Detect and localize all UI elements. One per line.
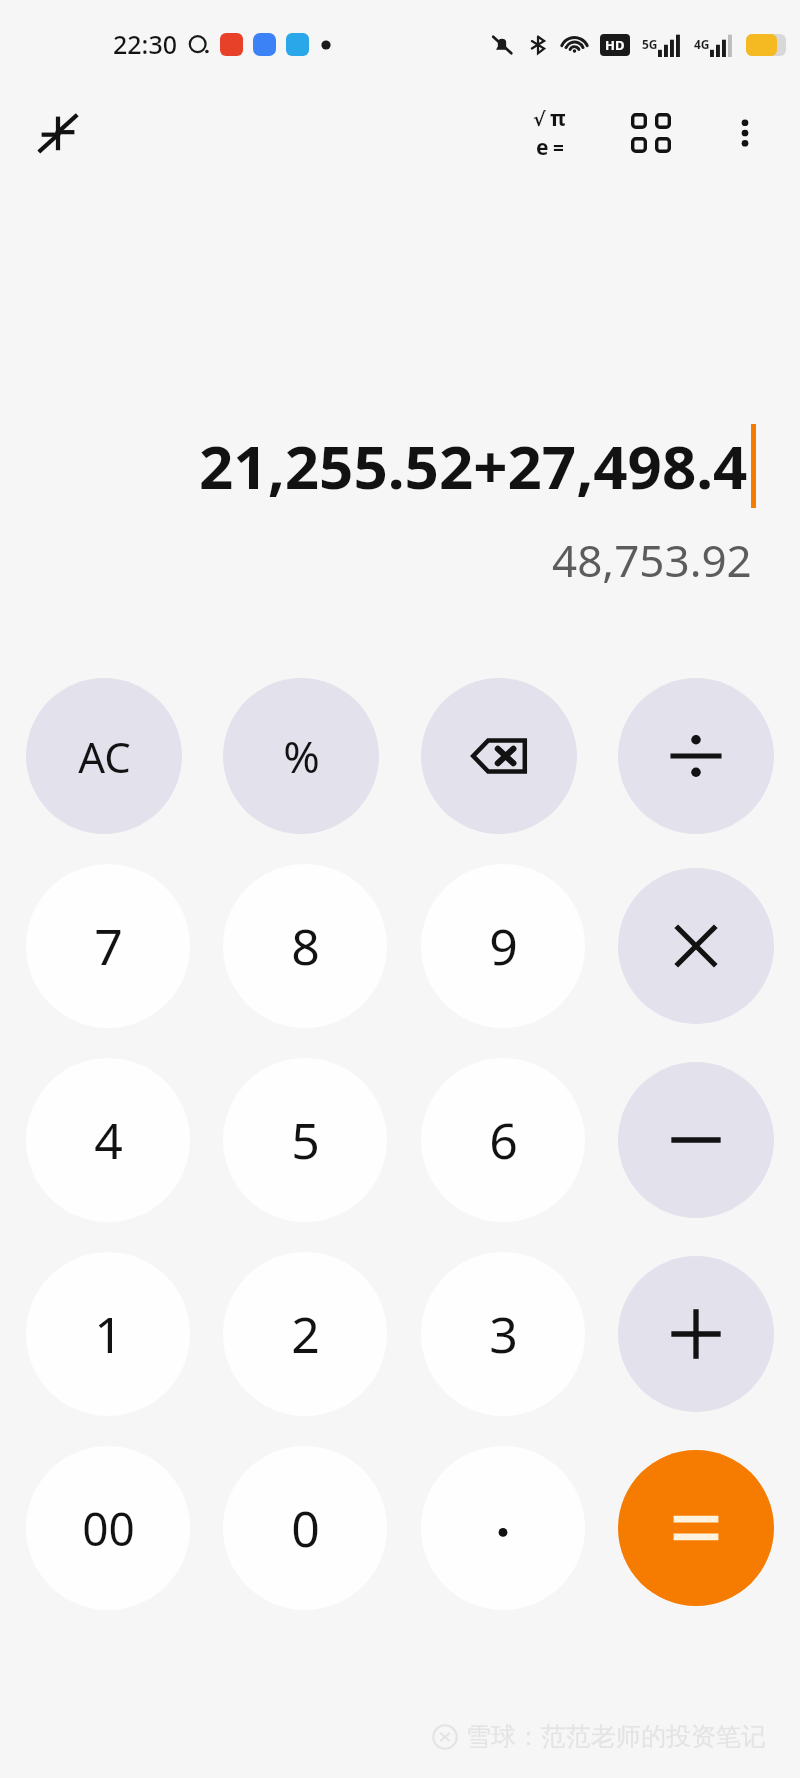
button[interactable]: 0	[223, 1446, 387, 1610]
button[interactable]: More options	[710, 98, 780, 168]
staticText: 6	[489, 1106, 518, 1174]
staticText: 雪球：范范老师的投资笔记	[466, 1721, 766, 1752]
staticText: 00	[82, 1497, 135, 1560]
staticText: 2	[291, 1300, 320, 1368]
button[interactable]: History	[614, 96, 688, 170]
button[interactable]: %	[223, 678, 379, 834]
staticText: HD	[605, 36, 625, 54]
button[interactable]: Divide	[618, 678, 774, 834]
staticText: 4	[94, 1106, 123, 1174]
button[interactable]: 9	[421, 864, 585, 1028]
staticText: e	[536, 133, 549, 162]
staticText: 8	[291, 912, 320, 980]
button[interactable]: AC	[26, 678, 182, 834]
button[interactable]: 1	[26, 1252, 190, 1416]
button[interactable]: 6	[421, 1058, 585, 1222]
staticText: 22:30	[113, 27, 178, 61]
staticText: 7	[94, 912, 123, 980]
button[interactable]: 4	[26, 1058, 190, 1222]
staticText: π	[550, 104, 566, 133]
staticText: =	[553, 135, 564, 161]
button[interactable]: 3	[421, 1252, 585, 1416]
button[interactable]: Collapse	[28, 103, 88, 163]
staticText: 3	[489, 1300, 518, 1368]
button[interactable]: Decimal point	[421, 1446, 585, 1610]
staticText: 5	[291, 1106, 320, 1174]
staticText: 9	[489, 912, 518, 980]
button[interactable]: 2	[223, 1252, 387, 1416]
button[interactable]: Multiply	[618, 868, 774, 1024]
staticText: %	[283, 726, 320, 786]
staticText: 1	[94, 1300, 123, 1368]
button[interactable]: Minus	[618, 1062, 774, 1218]
staticText: √	[533, 108, 546, 130]
staticText: 0	[291, 1494, 320, 1562]
button[interactable]: 00	[26, 1446, 190, 1610]
staticText: AC	[78, 728, 131, 785]
button[interactable]: Plus	[618, 1256, 774, 1412]
button[interactable]: 8	[223, 864, 387, 1028]
staticText: 21,255.52+27,498.4	[199, 425, 748, 507]
button[interactable]: Equals	[618, 1450, 774, 1606]
staticText: 5G	[642, 36, 658, 52]
staticText: 4G	[694, 36, 710, 52]
button[interactable]: Backspace	[421, 678, 577, 834]
button[interactable]: 7	[26, 864, 190, 1028]
button[interactable]: Scientific	[512, 96, 586, 170]
staticText: 48,753.92	[552, 530, 752, 590]
button[interactable]: 5	[223, 1058, 387, 1222]
